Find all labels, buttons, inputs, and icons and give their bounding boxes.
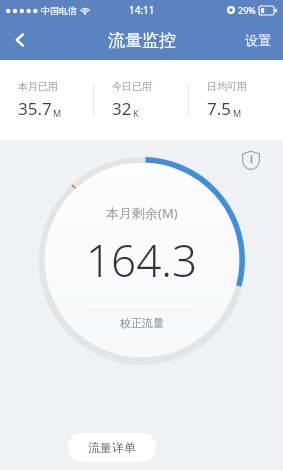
staticText: 流量详单: [88, 440, 136, 455]
staticText: 164.3: [86, 230, 198, 290]
button[interactable]: 校正流量: [102, 312, 182, 334]
staticText: 本月已用: [18, 80, 58, 93]
staticText: 日均可用: [207, 80, 247, 93]
staticText: 校正流量: [120, 316, 164, 330]
staticText: 中国电信: [41, 5, 77, 16]
staticText: 29%: [238, 4, 256, 16]
button[interactable]: 日均可用: [189, 60, 283, 140]
staticText: 35.7: [18, 97, 52, 120]
staticText: 32: [112, 97, 132, 120]
button[interactable]: 设置: [233, 20, 283, 60]
staticText: i: [250, 152, 253, 166]
button[interactable]: 今日已用: [94, 60, 188, 140]
staticText: 7.5: [207, 97, 232, 120]
staticText: 本月剩余(M): [106, 204, 178, 222]
staticText: M: [233, 107, 242, 119]
staticText: M: [53, 107, 62, 119]
staticText: K: [133, 107, 139, 119]
button[interactable]: 本月已用: [0, 60, 93, 140]
button[interactable]: Info: [237, 146, 265, 174]
button[interactable]: Back: [0, 20, 40, 60]
staticText: 14:11: [129, 3, 155, 17]
staticText: 流量监控: [108, 30, 176, 51]
staticText: 今日已用: [112, 80, 152, 93]
button[interactable]: 流量详单: [68, 433, 156, 462]
staticText: 设置: [245, 32, 271, 48]
